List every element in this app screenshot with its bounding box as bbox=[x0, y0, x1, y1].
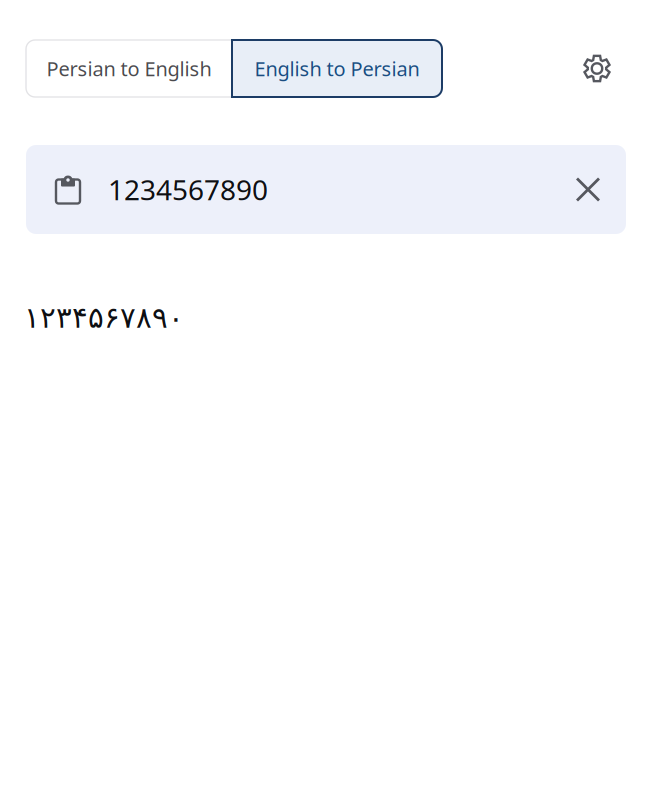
staticText: Persian to English bbox=[46, 55, 211, 82]
button[interactable]: English to Persian bbox=[232, 40, 442, 97]
button[interactable]: Settings bbox=[575, 46, 619, 90]
button[interactable]: Paste bbox=[46, 167, 90, 211]
button[interactable]: Persian to English bbox=[26, 40, 232, 97]
staticText: 1234567890 bbox=[108, 171, 268, 208]
staticText: English to Persian bbox=[254, 55, 419, 82]
staticText: ۱۲۳۴۵۶۷۸۹۰ bbox=[24, 301, 184, 334]
button[interactable]: 1234567890 bbox=[90, 145, 566, 234]
button[interactable]: Clear bbox=[566, 167, 610, 211]
